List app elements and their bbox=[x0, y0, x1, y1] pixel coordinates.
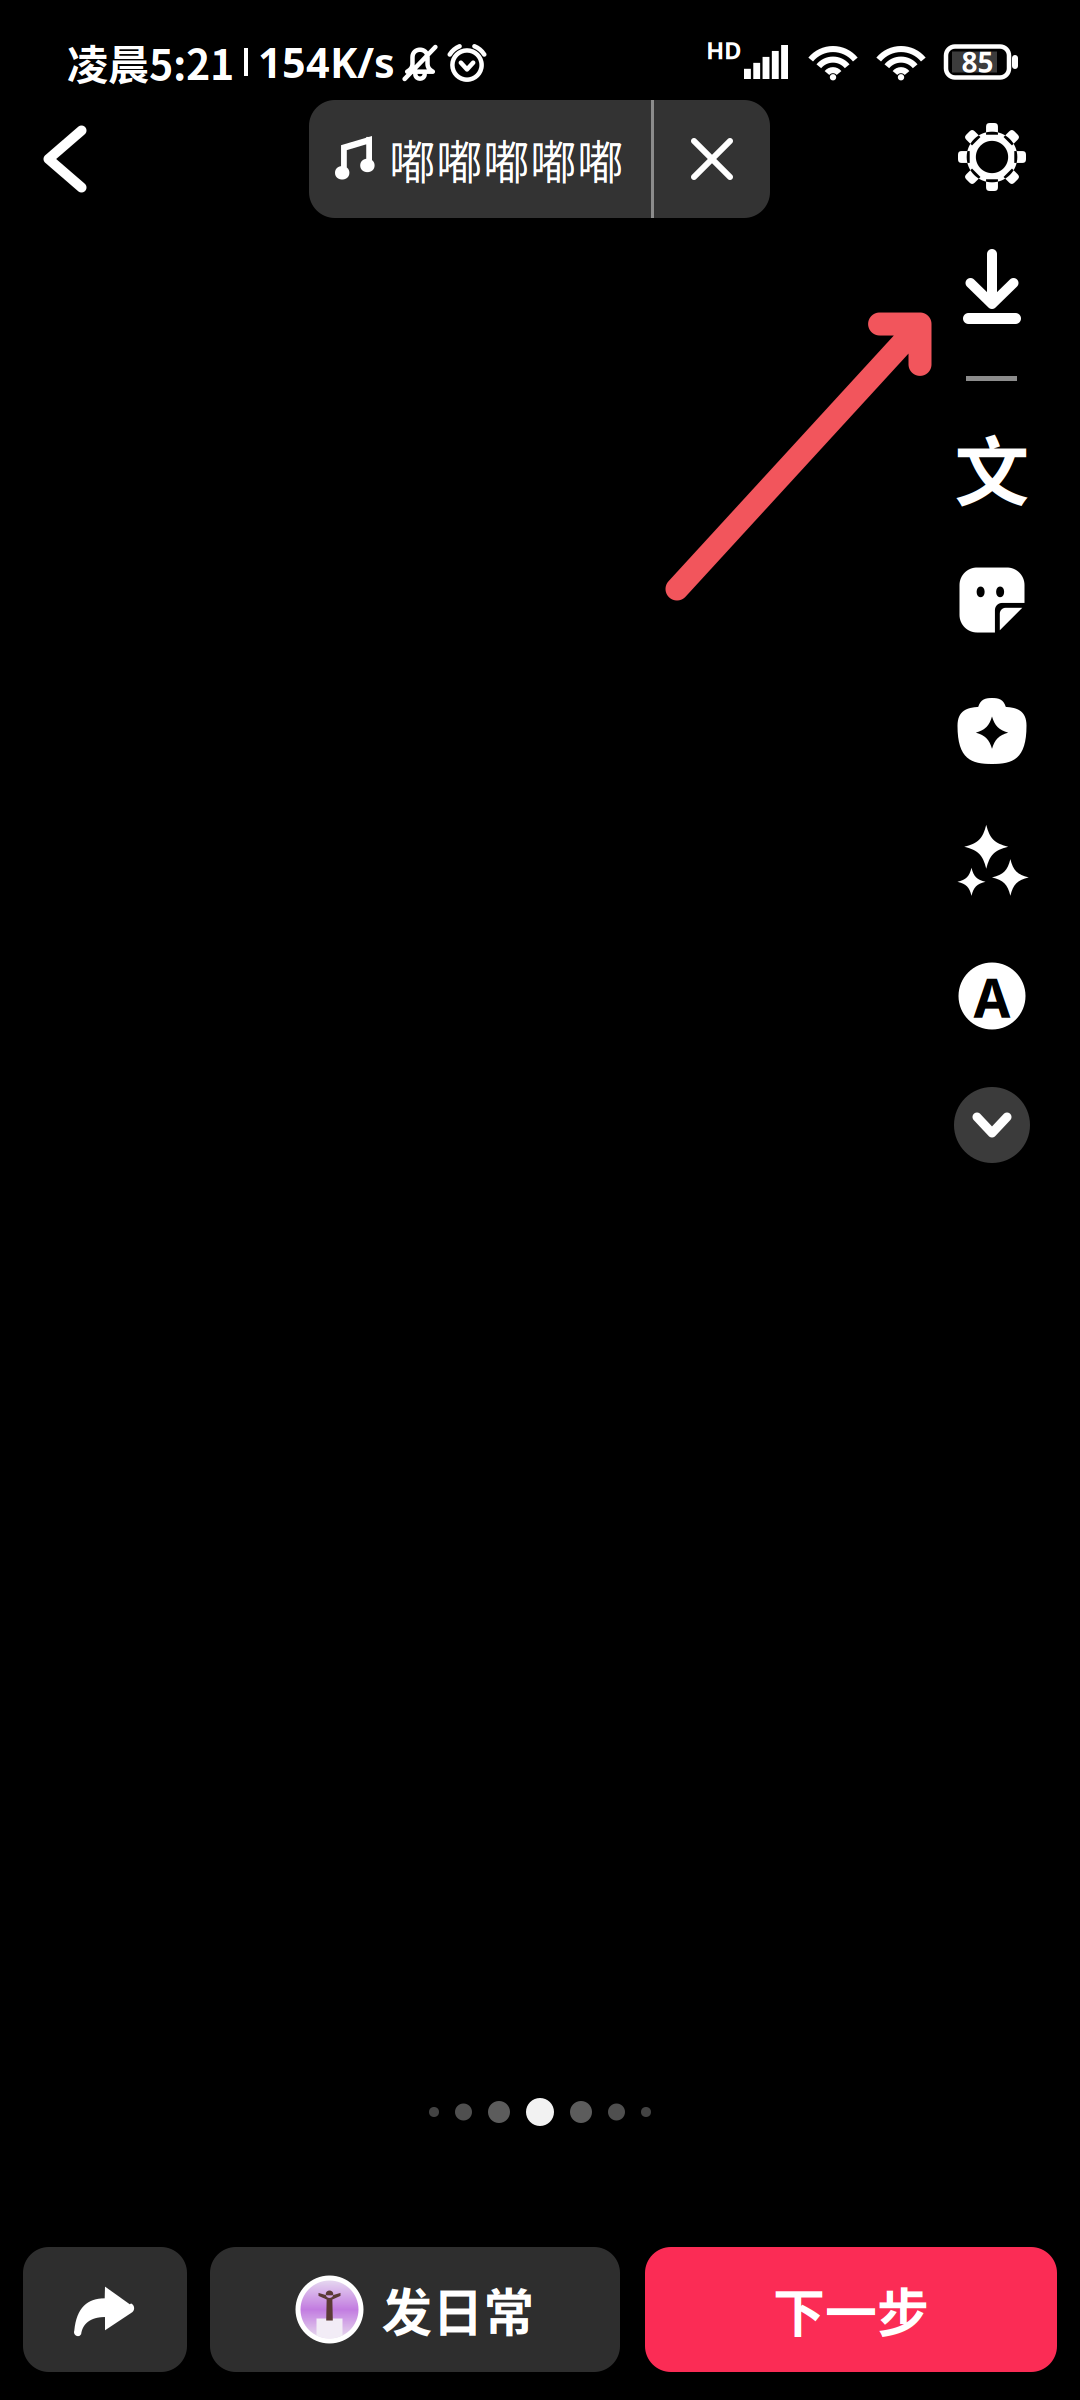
button[interactable]: Settings bbox=[936, 101, 1048, 213]
button[interactable]: Back bbox=[10, 104, 120, 214]
button[interactable]: 下一步 bbox=[645, 2247, 1057, 2372]
button[interactable]: Collapse toolbar bbox=[936, 1069, 1048, 1181]
staticText: 发日常 bbox=[381, 2273, 534, 2346]
button[interactable]: Beautify bbox=[936, 675, 1048, 787]
staticText: 154K/s bbox=[258, 34, 395, 90]
staticText: 85 bbox=[961, 43, 993, 81]
button[interactable]: 嘟嘟嘟嘟嘟 bbox=[309, 100, 770, 218]
staticText: 下一步 bbox=[773, 2272, 929, 2347]
button[interactable]: Auto enhance bbox=[936, 940, 1048, 1052]
button[interactable]: Share bbox=[23, 2247, 187, 2372]
button[interactable]: Text bbox=[936, 411, 1048, 523]
button[interactable]: Stickers bbox=[936, 544, 1048, 656]
button[interactable]: Effects bbox=[936, 805, 1048, 917]
button[interactable]: Save to album bbox=[936, 233, 1048, 345]
staticText: HD bbox=[706, 34, 742, 66]
button[interactable]: 发日常 bbox=[210, 2247, 620, 2372]
staticText: 凌晨5:21 bbox=[67, 32, 234, 92]
staticText: 文 bbox=[954, 413, 1029, 521]
staticText: A bbox=[973, 961, 1010, 1033]
staticText: 嘟嘟嘟嘟嘟 bbox=[389, 125, 624, 193]
